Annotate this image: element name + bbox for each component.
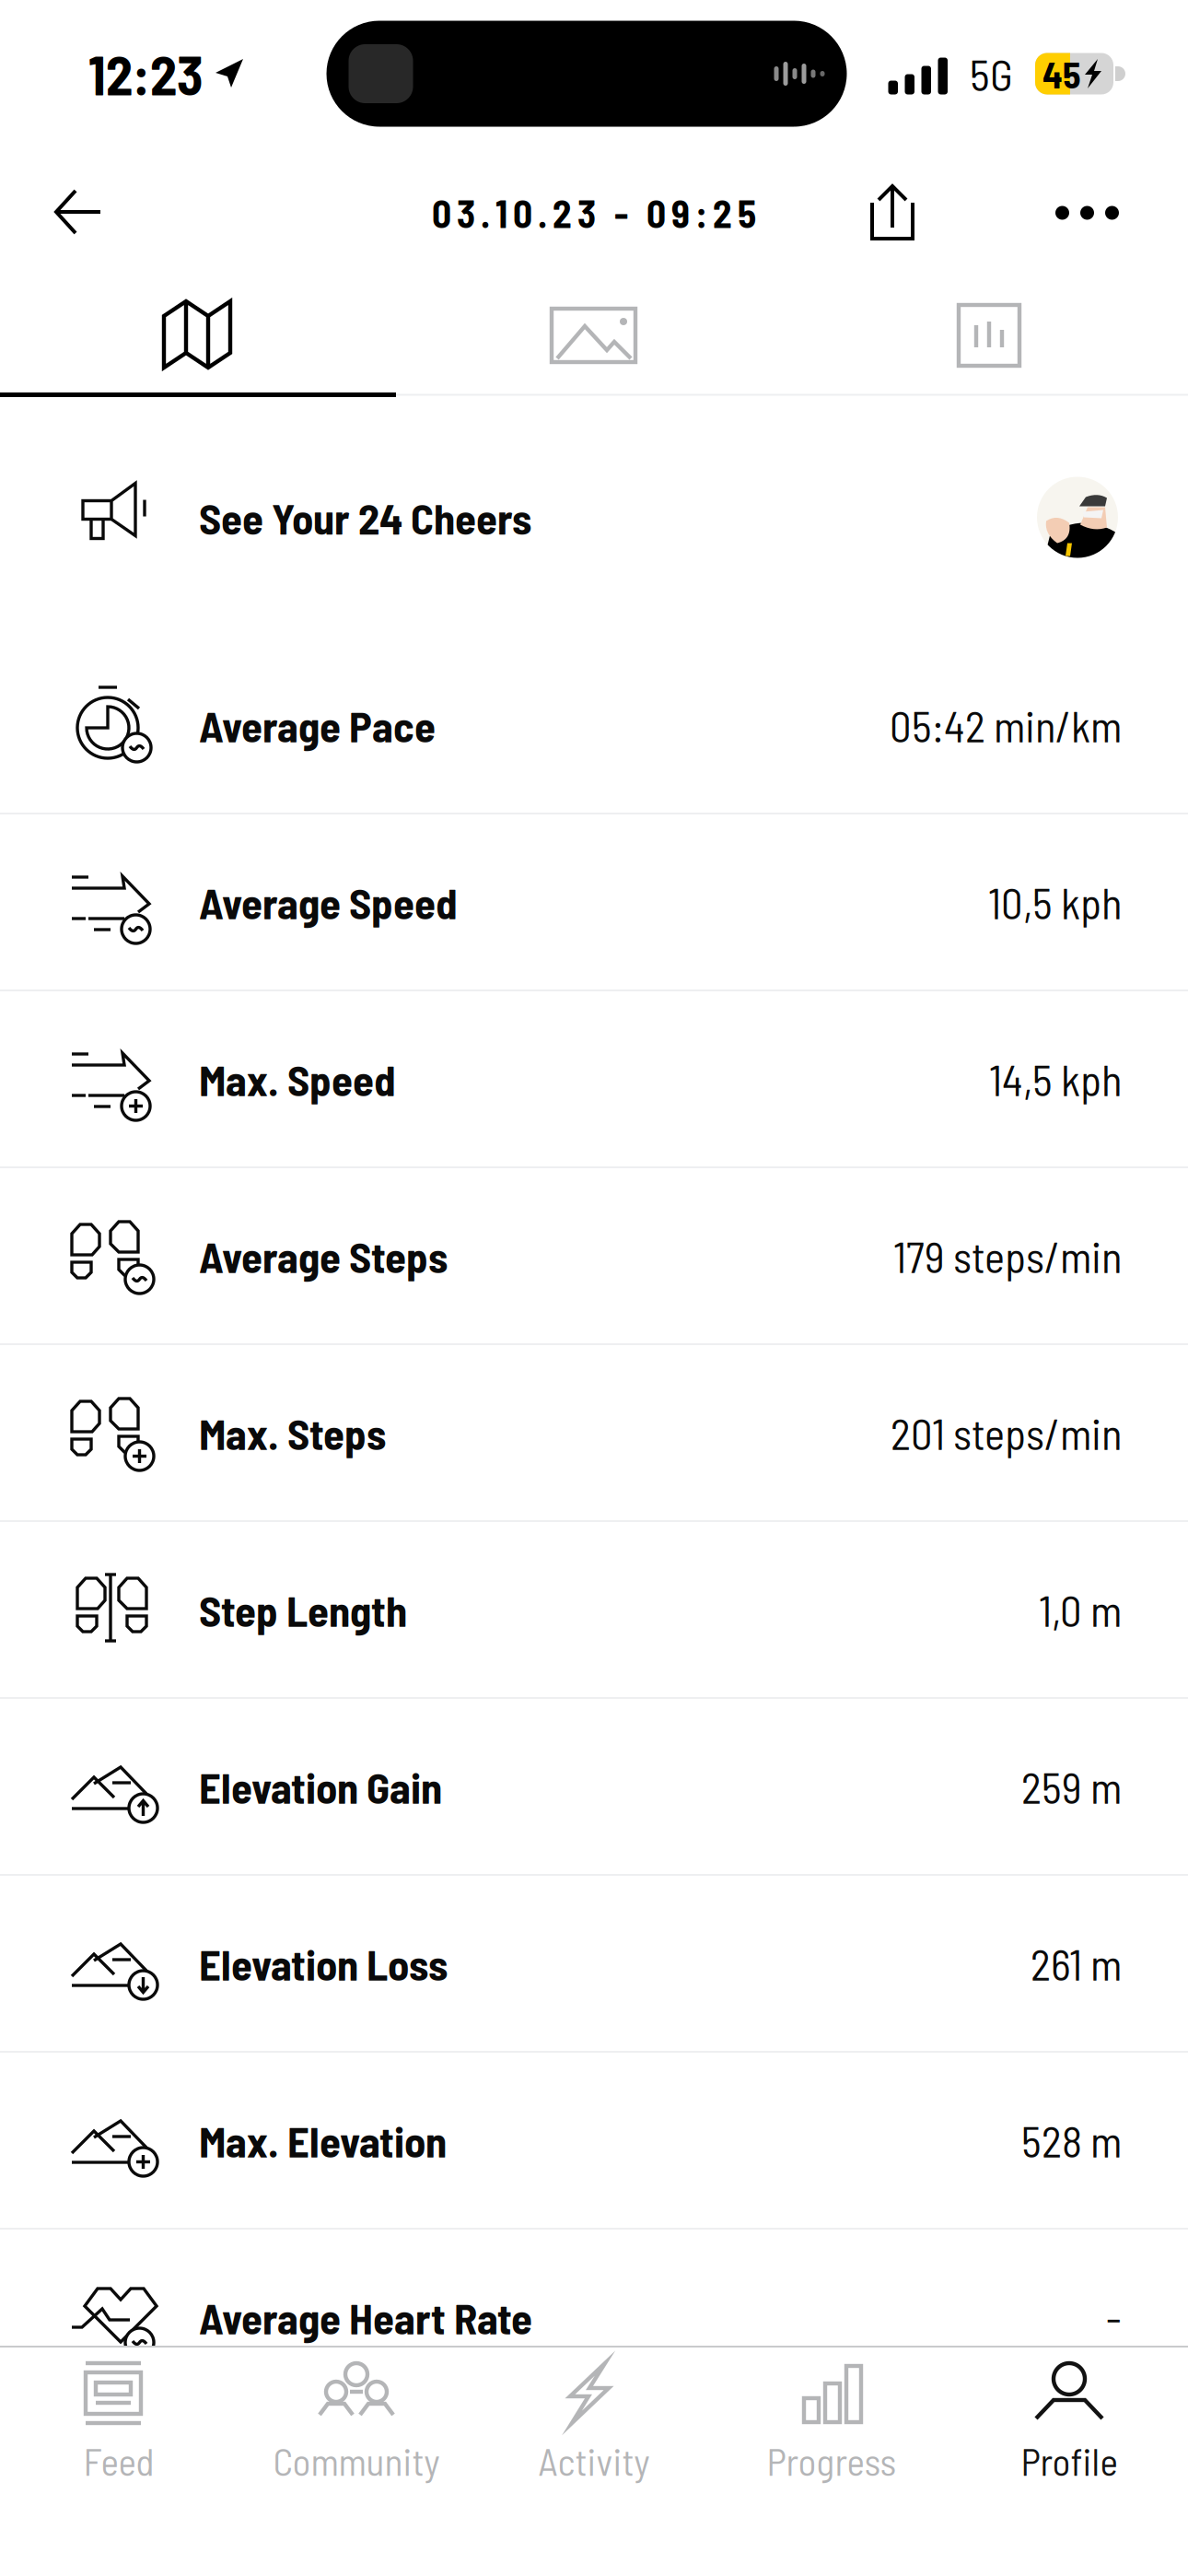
staticText: Average Steps [199,1230,448,1282]
staticText: 0 3 . 1 0 . 2 3 - 0 9 : 2 5 [432,190,756,236]
staticText: 10,5 kph [988,876,1122,928]
button[interactable]: Back [26,161,131,264]
button[interactable]: Feed [0,2361,238,2486]
button[interactable]: Progress [713,2361,950,2486]
button[interactable]: Statistics [792,278,1188,392]
staticText: 528 m [1021,2114,1122,2166]
staticText: 179 steps/min [893,1230,1122,1282]
button[interactable]: Average Steps [0,1168,1188,1345]
staticText: - [1106,2291,1122,2343]
staticText: 1,0 m [1039,1584,1122,1635]
staticText: Feed [83,2438,154,2483]
button[interactable]: Elevation Gain [0,1699,1188,1876]
button[interactable]: Max. Steps [0,1345,1188,1522]
staticText: 45 [1042,52,1081,96]
staticText: Elevation Loss [199,1938,448,1989]
staticText: 201 steps/min [891,1407,1122,1458]
staticText: Community [273,2438,440,2483]
button[interactable]: More options [1024,162,1188,263]
staticText: Max. Steps [199,1407,386,1458]
button[interactable]: Share [838,162,1024,263]
button[interactable]: Map [0,278,396,392]
staticText: Max. Speed [199,1053,396,1105]
staticText: 12:23 [88,41,204,106]
button[interactable]: Average Pace [0,638,1188,814]
staticText: Average Heart Rate [199,2291,532,2343]
button[interactable]: Activity [475,2361,713,2486]
button[interactable]: Max. Speed [0,991,1188,1168]
staticText: 05:42 min/km [890,699,1122,751]
staticText: Elevation Gain [199,1761,442,1812]
staticText: Profile [1021,2438,1118,2483]
staticText: 259 m [1021,1761,1122,1812]
button[interactable]: Step Length [0,1522,1188,1699]
staticText: Average Speed [199,876,458,928]
staticText: 14,5 kph [989,1053,1122,1105]
staticText: Average Pace [199,699,436,751]
button[interactable]: Average Speed [0,814,1188,991]
button[interactable]: Average Heart Rate [0,2230,1188,2406]
button[interactable]: Profile [950,2361,1188,2486]
staticText: Activity [538,2438,650,2483]
button[interactable]: Community [238,2361,475,2486]
button[interactable]: Elevation Loss [0,1876,1188,2053]
button[interactable]: Photos [396,278,792,392]
staticText: 261 m [1031,1938,1122,1989]
button[interactable]: See Your 24 Cheers [0,397,1188,638]
staticText: Step Length [199,1584,407,1635]
staticText: Max. Elevation [199,2114,447,2166]
button[interactable]: Max. Elevation [0,2053,1188,2230]
staticText: 5G [970,48,1013,100]
staticText: Progress [767,2438,897,2483]
staticText: See Your 24 Cheers [199,492,531,543]
